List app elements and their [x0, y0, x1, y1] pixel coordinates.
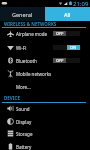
- button[interactable]: Switch off: [53, 31, 80, 36]
- staticText: Wi-Fi: [16, 45, 27, 51]
- button[interactable]: Switch on: [53, 45, 80, 50]
- button[interactable]: All: [45, 7, 90, 21]
- button[interactable]: Storage: [0, 127, 90, 140]
- staticText: Display: [16, 119, 32, 125]
- button[interactable]: General: [0, 7, 45, 21]
- staticText: Airplane mode: [16, 31, 48, 37]
- button[interactable]: Airplane mode: [0, 27, 90, 40]
- button[interactable]: Display: [0, 115, 90, 128]
- staticText: 21:09: [73, 0, 89, 7]
- staticText: More...: [16, 84, 31, 90]
- staticText: Sound: [16, 106, 30, 112]
- staticText: ON: [70, 45, 77, 50]
- staticText: WIRELESS & NETWORKS: [4, 21, 57, 27]
- staticText: Battery: [16, 144, 32, 150]
- button[interactable]: Switch off: [53, 58, 80, 63]
- staticText: Mobile networks: [16, 71, 52, 77]
- staticText: OFF: [56, 31, 64, 36]
- button[interactable]: Sound: [0, 102, 90, 115]
- button[interactable]: Wi-Fi: [0, 41, 90, 54]
- staticText: Bluetooth: [16, 58, 37, 64]
- button[interactable]: Mobile networks: [0, 67, 90, 80]
- staticText: DEVICE: [4, 95, 20, 101]
- staticText: OFF: [56, 58, 64, 63]
- staticText: Storage: [16, 131, 33, 137]
- staticText: General: [12, 11, 33, 18]
- button[interactable]: Battery: [0, 140, 90, 150]
- staticText: All: [64, 11, 71, 18]
- button[interactable]: Bluetooth: [0, 54, 90, 67]
- button[interactable]: More...: [0, 80, 90, 93]
